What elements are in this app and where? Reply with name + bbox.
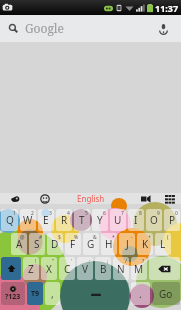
staticText: I [134, 213, 138, 227]
button[interactable]: G [83, 233, 99, 255]
button[interactable]: Voice search [148, 16, 178, 40]
staticText: A [16, 237, 23, 251]
staticText: ! [35, 258, 37, 265]
staticText: T9 [31, 289, 40, 299]
button[interactable]: N [113, 257, 129, 280]
staticText: Q [6, 213, 14, 227]
button[interactable]: R [56, 209, 72, 231]
staticText: ' [71, 258, 73, 265]
staticText: X [46, 262, 52, 276]
button[interactable]: L [155, 233, 171, 255]
staticText: , [51, 287, 54, 301]
staticText: O [150, 213, 158, 227]
button[interactable]: D [47, 233, 63, 255]
button[interactable]: S [29, 233, 45, 255]
staticText: U [114, 213, 122, 227]
staticText: M [134, 262, 144, 276]
button[interactable]: F [65, 233, 81, 255]
staticText: ? [142, 258, 145, 265]
button[interactable]: V [77, 257, 93, 280]
staticText: / [125, 258, 127, 265]
button[interactable]: Google [3, 16, 178, 40]
other: Shift [1, 257, 21, 280]
staticText: & [93, 234, 97, 241]
button[interactable]: H [101, 233, 117, 255]
button[interactable]: O [146, 209, 162, 231]
staticText: 9 [157, 210, 160, 217]
button[interactable]: Go [152, 282, 180, 305]
staticText: ?123 [5, 292, 21, 302]
button[interactable]: Shift [1, 257, 21, 280]
button[interactable]: I [128, 209, 144, 231]
staticText: G [87, 237, 95, 251]
staticText: ( [167, 234, 169, 241]
staticText: B [100, 262, 107, 276]
button[interactable]: Y [92, 209, 108, 231]
staticText: L [160, 237, 166, 251]
button[interactable]: ?123 [1, 282, 25, 305]
button[interactable]: Voice input [133, 193, 159, 204]
staticText: V [82, 262, 88, 276]
staticText: 1 [13, 210, 16, 217]
button[interactable]: X [41, 257, 57, 280]
staticText: R [61, 213, 68, 227]
button[interactable]: Q [1, 209, 18, 231]
button[interactable]: P [164, 209, 180, 231]
staticText: N [117, 262, 125, 276]
staticText: T [79, 213, 85, 227]
staticText: E [43, 213, 49, 227]
staticText: 7 [121, 210, 124, 217]
button[interactable]: C [59, 257, 75, 280]
other: Space [62, 282, 129, 305]
staticText: J [126, 237, 129, 251]
staticText: @ [20, 234, 25, 241]
staticText: 0 [175, 210, 178, 217]
button[interactable]: Keyboard layout [159, 193, 181, 204]
staticText: # [39, 234, 43, 241]
staticText: Z [28, 262, 34, 276]
button[interactable]: Theme [0, 193, 30, 204]
staticText: S [34, 237, 40, 251]
staticText: English [77, 193, 105, 204]
staticText: K [142, 237, 149, 251]
staticText: Google [25, 20, 65, 36]
staticText: Go [159, 287, 173, 301]
staticText: W [23, 213, 33, 227]
staticText: 8 [139, 210, 142, 217]
button[interactable]: M [131, 257, 147, 280]
button[interactable]: A [11, 233, 27, 255]
button[interactable]: Space [62, 282, 129, 305]
staticText: " [52, 258, 55, 265]
button[interactable]: Backspace [149, 257, 180, 280]
staticText: H [105, 237, 113, 251]
button[interactable]: J [119, 233, 135, 255]
staticText: C [64, 262, 71, 276]
button[interactable]: T9 [27, 282, 43, 305]
button[interactable]: . [131, 282, 150, 305]
other: Backspace [149, 257, 180, 280]
staticText: P [169, 213, 176, 227]
button[interactable]: U [110, 209, 126, 231]
staticText: 3 [49, 210, 52, 217]
button[interactable]: T [74, 209, 90, 231]
staticText: 4 [67, 210, 70, 217]
button[interactable]: K [137, 233, 153, 255]
staticText: F [70, 237, 76, 251]
button[interactable]: W [20, 209, 36, 231]
staticText: $ [58, 234, 61, 241]
staticText: + [148, 234, 151, 241]
button[interactable]: , [45, 282, 60, 305]
button[interactable]: English [77, 193, 105, 204]
staticText: Y [97, 213, 103, 227]
staticText: - [131, 234, 133, 241]
staticText: ; [107, 258, 109, 265]
button[interactable]: B [95, 257, 111, 280]
button[interactable]: Z [23, 257, 39, 280]
staticText: . [139, 287, 142, 301]
button[interactable]: Emoji [30, 193, 60, 204]
staticText: 2 [31, 210, 34, 217]
staticText: 11:37 [155, 2, 179, 14]
staticText: D [51, 237, 59, 251]
button[interactable]: E [38, 209, 54, 231]
staticText: 5 [85, 210, 88, 217]
